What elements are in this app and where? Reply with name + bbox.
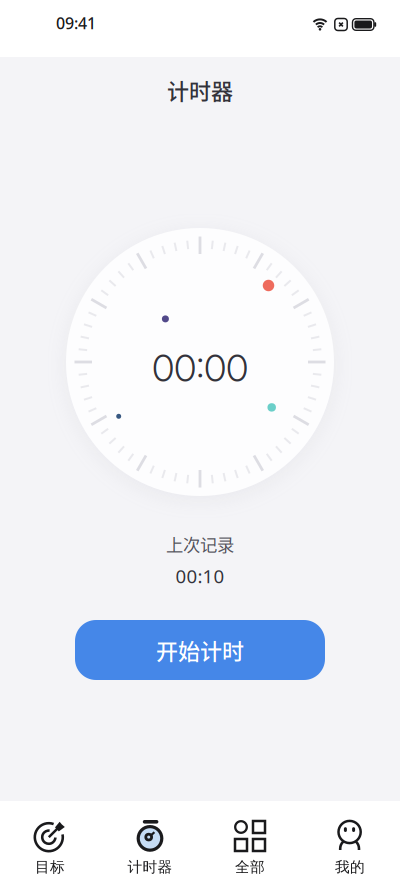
button[interactable]: 目标 xyxy=(0,809,100,887)
staticText: 全部 xyxy=(235,858,265,876)
staticText: 00:10 xyxy=(175,564,224,588)
staticText: 计时器 xyxy=(127,858,172,876)
staticText: 09:41 xyxy=(56,12,96,34)
staticText: 00:00 xyxy=(152,345,248,391)
staticText: 上次记录 xyxy=(166,531,234,557)
staticText: 计时器 xyxy=(167,74,233,106)
button[interactable]: 计时器 xyxy=(100,809,200,887)
staticText: 目标 xyxy=(35,858,65,876)
staticText: 开始计时 xyxy=(156,634,244,666)
button[interactable]: 全部 xyxy=(200,809,300,887)
button[interactable]: 开始计时 xyxy=(75,620,325,680)
staticText: 我的 xyxy=(335,858,365,876)
button[interactable]: 我的 xyxy=(300,809,400,887)
